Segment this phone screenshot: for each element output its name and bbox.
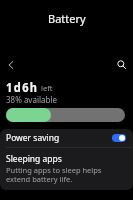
- staticText: left: [41, 83, 53, 93]
- staticText: d: [14, 78, 21, 96]
- staticText: Sleeping apps: [6, 153, 62, 165]
- staticText: h: [30, 78, 37, 96]
- staticText: Power saving: [6, 132, 60, 144]
- staticText: 6: [22, 78, 29, 96]
- staticText: 38% available: [6, 94, 58, 105]
- staticText: 1: [6, 78, 13, 96]
- staticText: Putting apps to sleep helps extend batte…: [6, 165, 126, 184]
- button[interactable]: Sleeping apps: [0, 148, 133, 184]
- button[interactable]: Search: [111, 54, 131, 74]
- button[interactable]: Power saving: [0, 129, 133, 147]
- button[interactable]: Back: [0, 54, 20, 75]
- staticText: Battery: [48, 11, 86, 26]
